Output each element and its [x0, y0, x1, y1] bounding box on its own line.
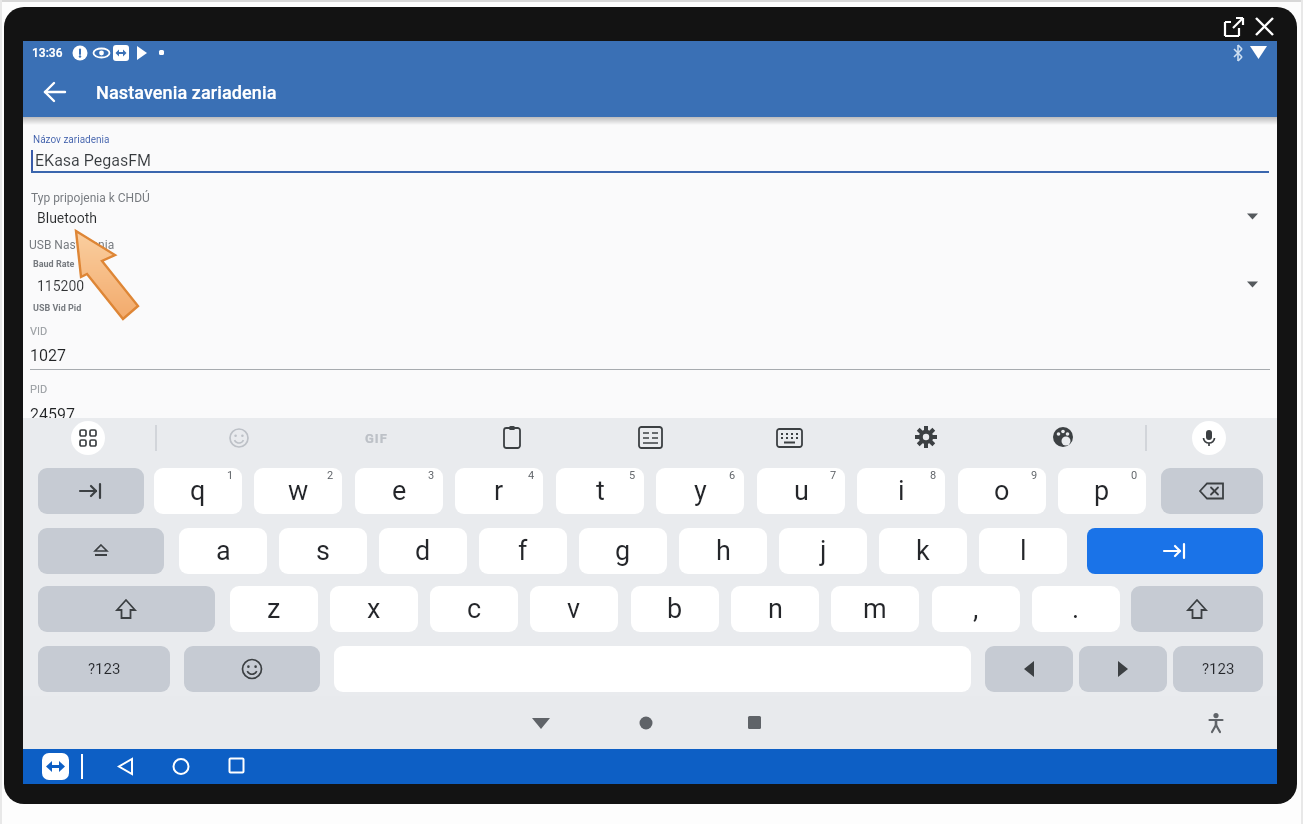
button[interactable] [532, 717, 552, 730]
button[interactable] [118, 758, 135, 775]
button[interactable]: t [556, 468, 644, 514]
button[interactable]: . [1032, 586, 1120, 632]
staticText: 1027 [30, 346, 66, 365]
staticText: Typ pripojenia k CHDÚ [31, 191, 150, 205]
staticText: 9 [1031, 469, 1038, 482]
staticText: 6 [729, 469, 736, 482]
staticText: 24597 [30, 405, 75, 418]
button[interactable]: h [679, 528, 767, 574]
staticText: Nastavenia zariadenia [96, 82, 277, 103]
button[interactable]: i [857, 468, 945, 514]
button[interactable] [1079, 646, 1167, 692]
staticText: r [494, 475, 504, 507]
staticText: 115200 [37, 278, 85, 294]
staticText: Názov zariadenia [33, 134, 110, 146]
button[interactable]: m [831, 586, 919, 632]
button[interactable]: n [731, 586, 819, 632]
button[interactable]: p [1058, 468, 1146, 514]
staticText: e [392, 475, 407, 507]
staticText: q [190, 475, 206, 507]
button[interactable]: g [579, 528, 667, 574]
button[interactable] [639, 427, 663, 449]
button[interactable]: d [379, 528, 467, 574]
staticText: 5 [629, 469, 636, 482]
button[interactable]: GIF [355, 427, 397, 449]
button[interactable]: x [330, 586, 418, 632]
staticText: y [694, 475, 707, 507]
staticText: 7 [830, 469, 837, 482]
button[interactable]: e [355, 468, 443, 514]
button[interactable] [184, 646, 320, 692]
staticText: h [716, 535, 731, 567]
button[interactable] [38, 468, 144, 514]
button[interactable] [1222, 15, 1246, 39]
button[interactable]: u [757, 468, 845, 514]
button[interactable]: a [179, 528, 267, 574]
staticText: USB Vid Pid [33, 303, 82, 314]
button[interactable]: y [656, 468, 744, 514]
button[interactable] [228, 427, 250, 449]
button[interactable]: b [631, 586, 719, 632]
button[interactable] [23, 341, 1277, 371]
staticText: 0 [1131, 469, 1138, 482]
button[interactable]: k [879, 528, 967, 574]
button[interactable] [1253, 15, 1277, 39]
button[interactable] [1192, 421, 1226, 455]
button[interactable] [1087, 528, 1263, 574]
button[interactable]: r [455, 468, 543, 514]
staticText: . [1072, 593, 1080, 625]
button[interactable] [42, 753, 69, 780]
button[interactable] [915, 426, 937, 448]
button[interactable]: c [430, 586, 518, 632]
staticText: ?123 [1202, 660, 1235, 678]
button[interactable]: v [530, 586, 618, 632]
staticText: x [367, 593, 381, 625]
button[interactable]: s [279, 528, 367, 574]
button[interactable]: , [932, 586, 1020, 632]
button[interactable] [748, 716, 762, 730]
staticText: l [1020, 535, 1027, 567]
staticText: n [768, 593, 783, 625]
button[interactable]: z [230, 586, 318, 632]
staticText: USB Nastavenia [29, 238, 115, 252]
button[interactable] [1161, 468, 1263, 514]
button[interactable]: f [479, 528, 567, 574]
staticText: 8 [930, 469, 937, 482]
staticText: o [994, 475, 1010, 507]
staticText: d [415, 535, 431, 567]
button[interactable]: ?123 [38, 646, 170, 692]
button[interactable] [1208, 713, 1224, 733]
staticText: v [567, 593, 581, 625]
staticText: GIF [365, 431, 388, 446]
button[interactable] [23, 125, 1277, 173]
button[interactable] [38, 528, 164, 574]
staticText: EKasa PegasFM [35, 151, 151, 170]
button[interactable] [43, 80, 69, 104]
button[interactable]: q [154, 468, 242, 514]
button[interactable] [31, 207, 1269, 231]
button[interactable]: ?123 [1173, 646, 1263, 692]
button[interactable] [639, 716, 653, 730]
button[interactable] [229, 758, 244, 773]
button[interactable] [985, 646, 1073, 692]
button[interactable] [1052, 426, 1074, 448]
staticText: t [596, 475, 605, 507]
button[interactable]: l [979, 528, 1067, 574]
button[interactable]: j [779, 528, 867, 574]
button[interactable]: w [254, 468, 342, 514]
button[interactable] [1131, 586, 1263, 632]
button[interactable] [38, 586, 215, 632]
staticText: k [916, 535, 930, 567]
staticText: i [898, 475, 905, 507]
button[interactable]: o [958, 468, 1046, 514]
staticText: 13:36 [32, 46, 63, 60]
button[interactable] [777, 429, 803, 448]
button[interactable] [501, 426, 523, 450]
button[interactable] [23, 379, 1277, 418]
staticText: Baud Rate [33, 259, 75, 270]
staticText: b [667, 593, 683, 625]
button[interactable] [33, 274, 1269, 298]
button[interactable] [71, 421, 105, 455]
button[interactable] [172, 758, 190, 775]
